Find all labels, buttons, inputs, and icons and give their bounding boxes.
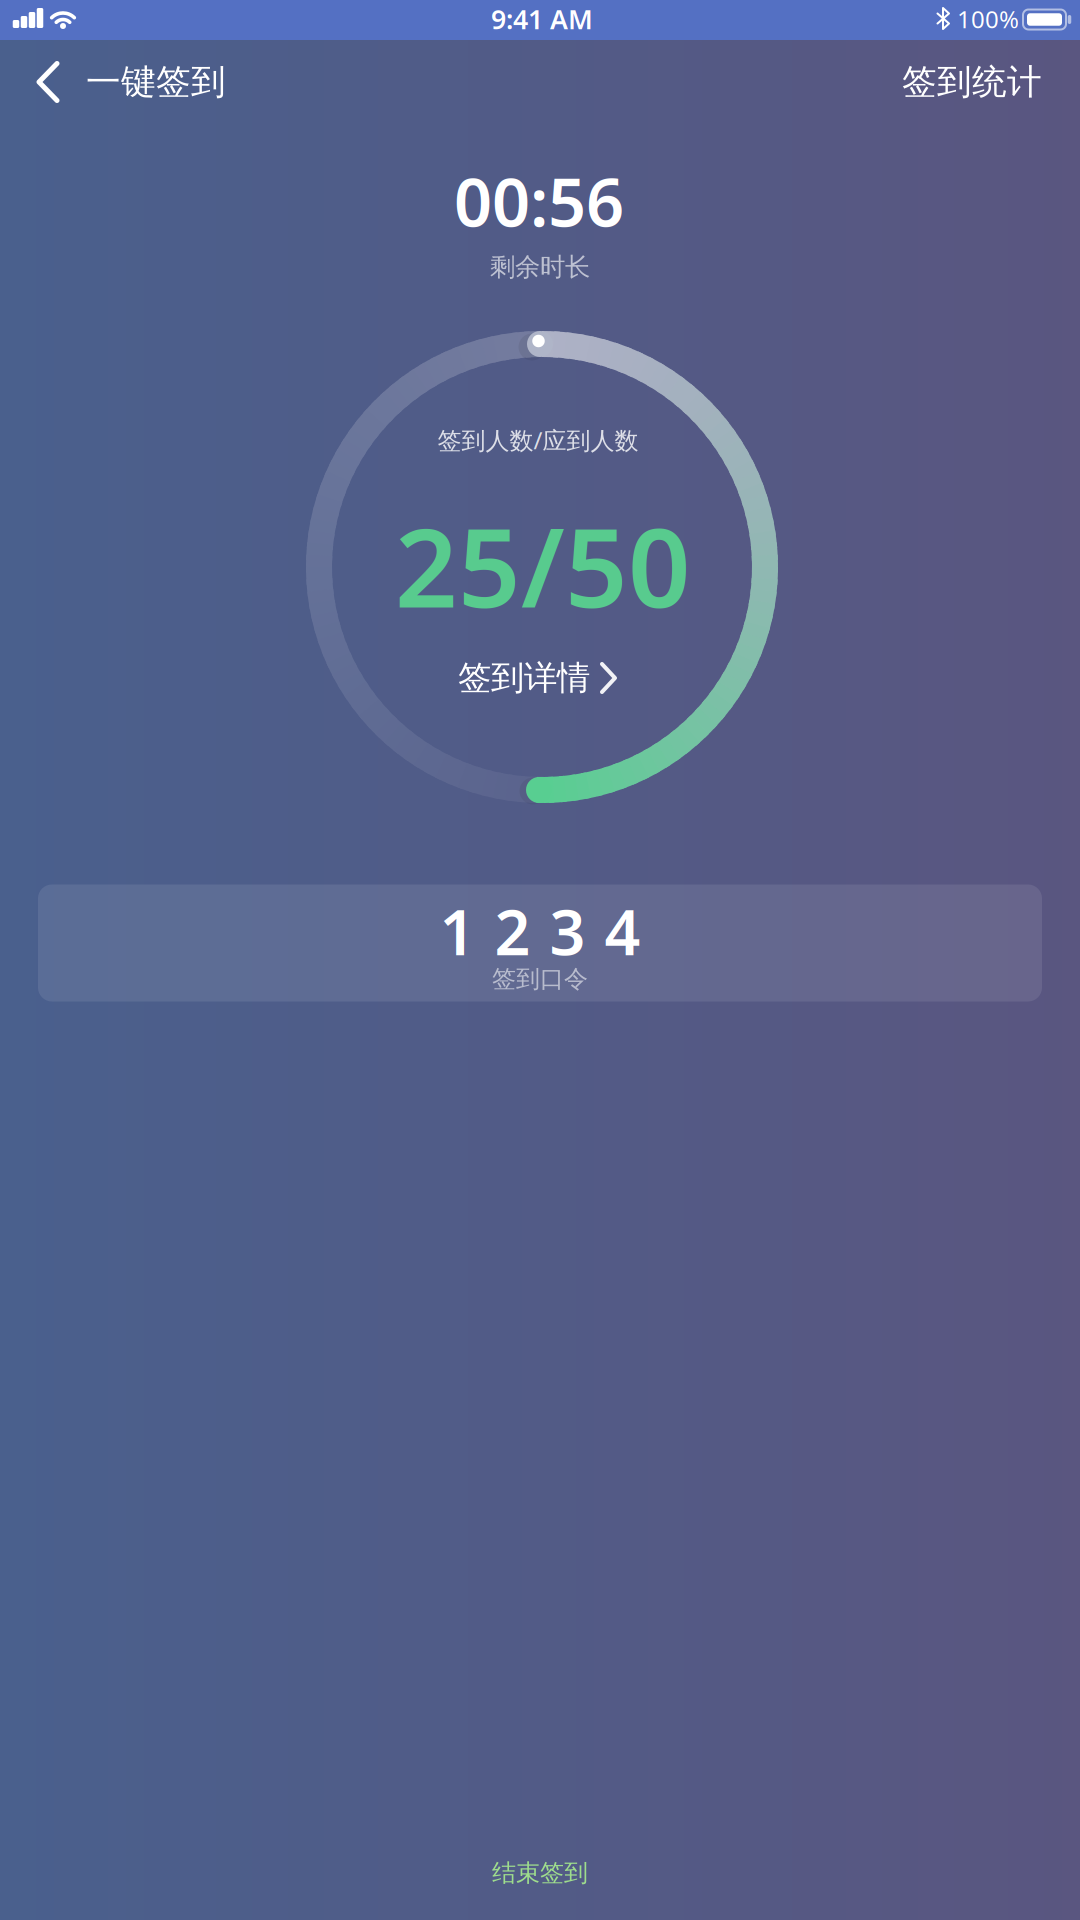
button[interactable]: 结束签到: [492, 1858, 588, 1888]
staticText: 签到口令: [492, 964, 588, 994]
button[interactable]: 签到统计: [902, 61, 1042, 103]
staticText: 00:56: [454, 157, 624, 245]
staticText: 4: [604, 889, 640, 973]
staticText: 25/50: [395, 492, 691, 638]
button[interactable]: 签到详情: [458, 657, 618, 698]
staticText: 结束签到: [492, 1858, 588, 1888]
staticText: 签到人数/应到人数: [437, 424, 638, 456]
staticText: 2: [494, 889, 530, 973]
staticText: 一键签到: [86, 61, 226, 103]
staticText: 签到统计: [902, 61, 1042, 103]
staticText: 9:41 AM: [491, 1, 593, 37]
staticText: 剩余时长: [490, 251, 590, 282]
staticText: 签到详情: [458, 657, 590, 698]
staticText: 3: [549, 889, 585, 973]
button[interactable]: Back: [36, 61, 226, 103]
staticText: 1: [439, 889, 475, 973]
staticText: 100%: [957, 3, 1019, 35]
